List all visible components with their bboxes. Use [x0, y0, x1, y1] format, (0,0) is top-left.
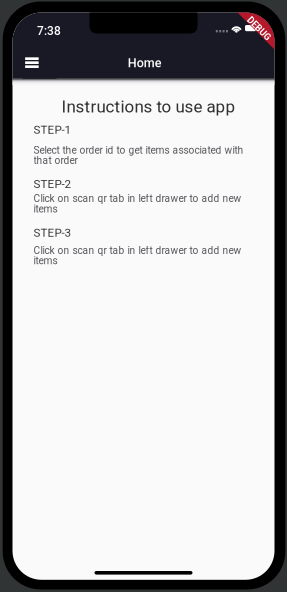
staticText: Select the order id to get items associa… — [33, 144, 243, 166]
staticText: STEP-2 — [33, 177, 71, 191]
staticText: DEBUG — [244, 23, 273, 34]
staticText: STEP-1 — [33, 123, 71, 136]
staticText: STEP-3 — [33, 226, 71, 240]
staticText: Home — [128, 56, 162, 70]
staticText: 7:38 — [37, 24, 61, 38]
staticText: Instructions to use app — [61, 97, 235, 116]
button[interactable]: Menu — [22, 44, 56, 79]
staticText: Click on scan qr tab in left drawer to a… — [33, 193, 241, 215]
staticText: Click on scan qr tab in left drawer to a… — [33, 244, 241, 267]
